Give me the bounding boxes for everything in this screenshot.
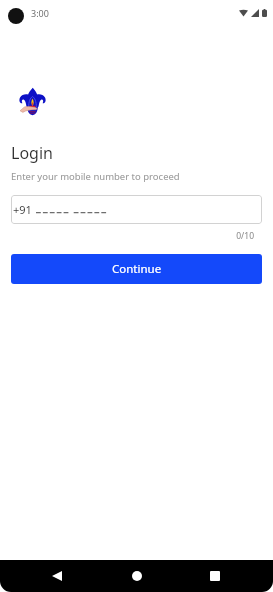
button[interactable]: +91 [11,195,262,224]
button[interactable]: Back [44,563,70,589]
button[interactable]: Continue [11,254,262,284]
staticText: 3:00 [31,7,49,19]
staticText: +91 [13,202,32,217]
staticText: Login [11,142,53,164]
staticText: Enter your mobile number to proceed [11,170,180,183]
button[interactable]: Recent apps [202,563,228,589]
button[interactable]: Home [124,563,150,589]
staticText: Continue [112,261,162,277]
staticText: 0/10 [0,230,254,242]
